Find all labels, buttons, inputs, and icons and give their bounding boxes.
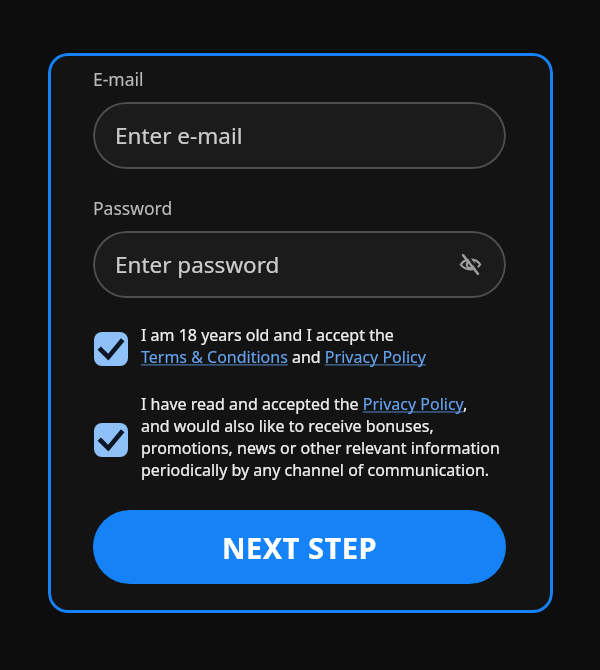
button[interactable]: NEXT STEP [93,510,506,584]
staticText: Enter password [115,249,280,280]
staticText: E-mail [93,67,144,91]
button[interactable] [94,332,128,366]
staticText: Password [93,196,173,220]
button[interactable]: Enter e-mail [93,102,506,169]
button[interactable]: Enter password [93,231,506,298]
staticText: Enter e-mail [115,120,243,151]
staticText: NEXT STEP [222,528,377,567]
staticText: I am 18 years old and I accept the Terms… [141,324,426,368]
button[interactable] [94,423,128,457]
staticText: I have read and accepted the Privacy Pol… [141,393,500,481]
